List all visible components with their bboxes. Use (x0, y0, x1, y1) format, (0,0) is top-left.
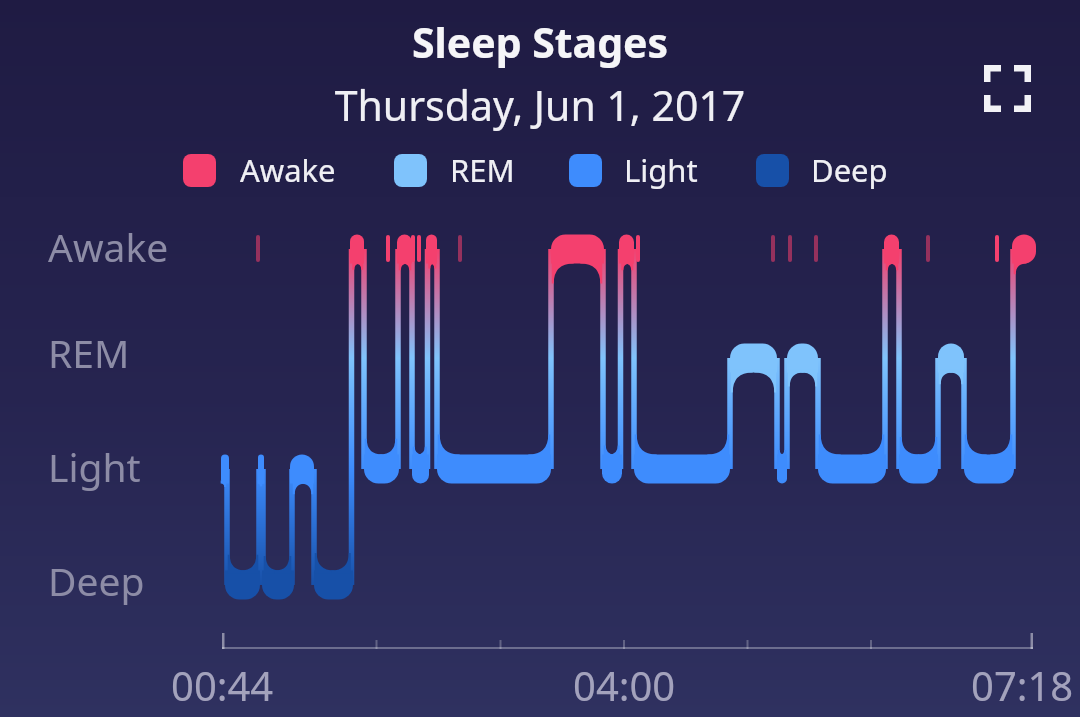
staticText: 07:18 (971, 658, 1074, 706)
staticText: Deep (811, 149, 888, 191)
staticText: REM (48, 326, 130, 378)
staticText: 04:00 (573, 658, 676, 706)
staticText: Thursday, Jun 1, 2017 (0, 77, 1080, 133)
staticText: Light (48, 440, 141, 492)
staticText: REM (450, 149, 515, 191)
staticText: 00:44 (171, 658, 274, 706)
staticText: Light (624, 149, 698, 191)
staticText: Awake (240, 149, 336, 191)
staticText: Sleep Stages (0, 14, 1080, 70)
staticText: Awake (48, 220, 169, 272)
button[interactable] (974, 55, 1040, 121)
staticText: Deep (48, 554, 145, 606)
